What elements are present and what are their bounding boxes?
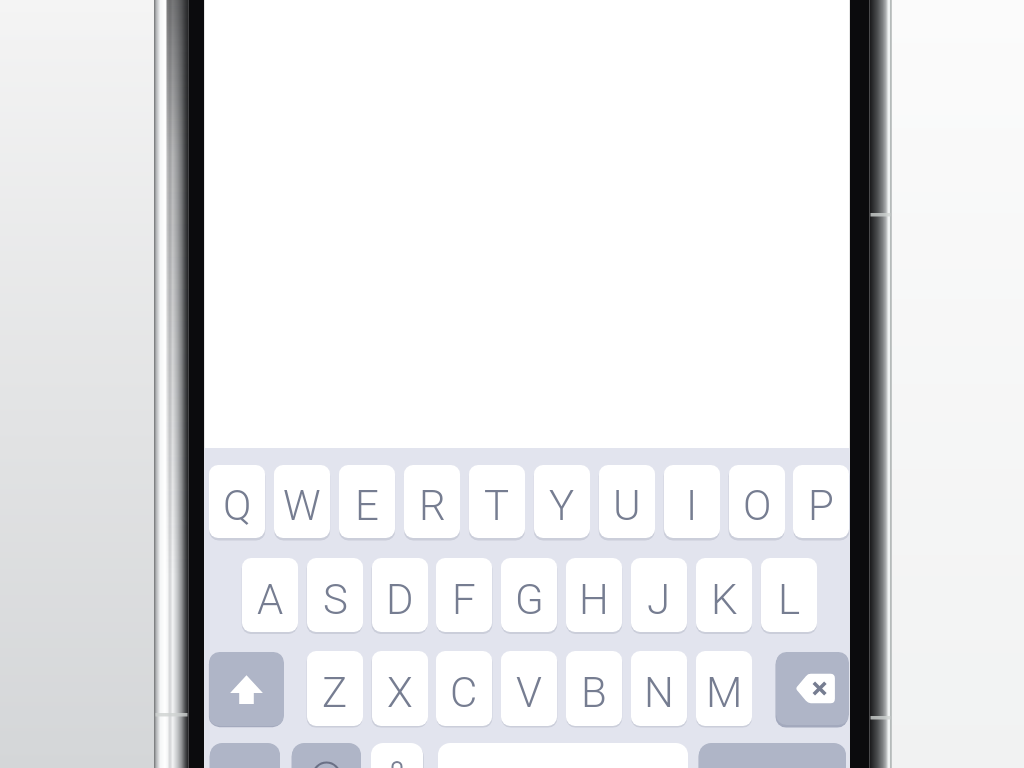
button[interactable]: B — [566, 651, 622, 726]
button[interactable]: F — [436, 558, 492, 632]
button[interactable]: R — [404, 465, 460, 538]
staticText: V — [516, 668, 542, 717]
button[interactable]: A — [242, 558, 298, 632]
staticText: J — [647, 575, 671, 624]
staticText: R — [419, 481, 446, 530]
staticText: P — [808, 481, 834, 530]
button[interactable]: S — [307, 558, 363, 632]
staticText: O — [743, 481, 772, 530]
button[interactable]: V — [501, 651, 557, 726]
staticText: W — [283, 481, 321, 530]
button[interactable]: H — [566, 558, 622, 632]
staticText: X — [387, 668, 413, 717]
button[interactable]: P — [793, 465, 849, 538]
staticText: G — [515, 575, 544, 624]
button[interactable] — [371, 743, 423, 768]
staticText: I — [686, 481, 698, 530]
button[interactable]: D — [372, 558, 428, 632]
button[interactable]: K — [696, 558, 752, 632]
staticText: N — [644, 668, 674, 717]
staticText: Z — [322, 668, 348, 717]
staticText: L — [778, 575, 801, 624]
button[interactable]: I — [664, 465, 720, 538]
staticText: M — [706, 668, 743, 717]
button[interactable]: Y — [534, 465, 590, 538]
staticText: U — [613, 481, 641, 530]
staticText: E — [355, 481, 379, 530]
button[interactable] — [292, 743, 361, 768]
button[interactable] — [776, 652, 849, 725]
button[interactable]: Q — [209, 465, 265, 538]
staticText: Q — [223, 481, 252, 530]
button[interactable]: M — [696, 651, 752, 726]
button[interactable]: E — [339, 465, 395, 538]
staticText: A — [257, 575, 284, 624]
staticText: Y — [549, 481, 575, 530]
button[interactable]: C — [436, 651, 492, 726]
button[interactable] — [699, 743, 846, 768]
button[interactable]: X — [372, 651, 428, 726]
button[interactable]: U — [599, 465, 655, 538]
staticText: B — [581, 668, 607, 717]
button[interactable]: O — [729, 465, 785, 538]
staticText: T — [484, 481, 510, 530]
button[interactable]: N — [631, 651, 687, 726]
button[interactable] — [209, 652, 284, 726]
button[interactable]: T — [469, 465, 525, 538]
staticText: S — [323, 575, 348, 624]
button[interactable]: G — [501, 558, 557, 632]
staticText: D — [386, 575, 414, 624]
button[interactable]: L — [761, 558, 817, 632]
button[interactable]: J — [631, 558, 687, 632]
button[interactable] — [210, 743, 280, 768]
staticText: F — [452, 575, 476, 624]
button[interactable]: Z — [307, 651, 363, 726]
staticText: K — [711, 575, 738, 624]
staticText: H — [579, 575, 609, 624]
button[interactable]: W — [274, 465, 330, 538]
staticText: C — [450, 668, 478, 717]
